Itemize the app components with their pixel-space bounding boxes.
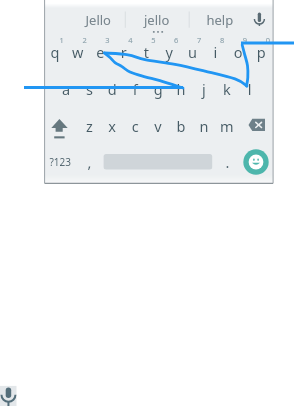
other: Gesture typing keyboard <box>0 0 296 406</box>
